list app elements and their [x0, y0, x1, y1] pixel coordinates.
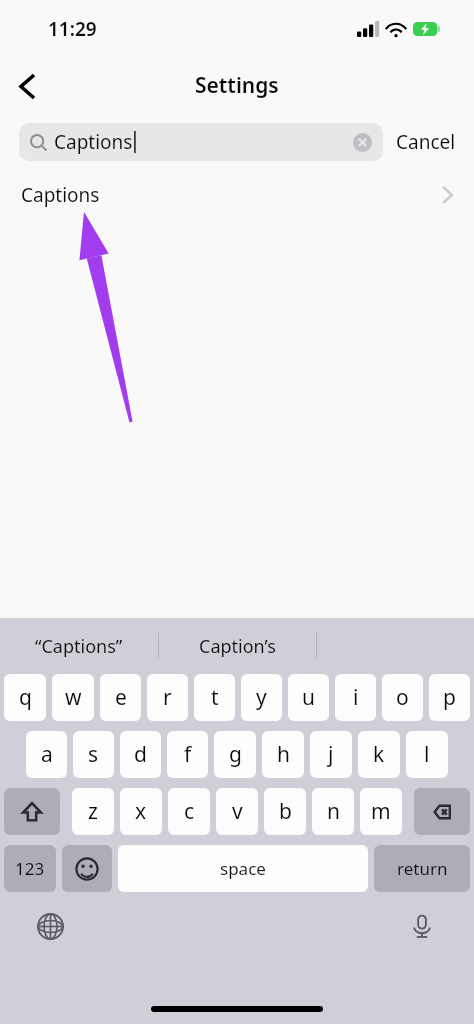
staticText: p	[443, 683, 456, 712]
button[interactable]: j	[310, 731, 352, 778]
staticText: w	[65, 683, 82, 712]
staticText: c	[184, 797, 195, 826]
button[interactable]: Clear text	[353, 133, 372, 152]
button[interactable]: q	[4, 674, 46, 721]
staticText: u	[302, 683, 315, 712]
staticText: 123	[15, 857, 45, 880]
button[interactable]: x	[120, 788, 162, 835]
button[interactable]: Switch keyboard language	[28, 904, 72, 948]
staticText: s	[88, 740, 99, 769]
button[interactable]: d	[120, 731, 161, 778]
button[interactable]: e	[100, 674, 141, 721]
button[interactable]: Back	[4, 63, 50, 109]
staticText: n	[327, 797, 340, 826]
button[interactable]: r	[147, 674, 188, 721]
staticText: f	[184, 740, 192, 769]
button[interactable]: Caption’s	[159, 618, 316, 674]
staticText: t	[211, 683, 219, 712]
button[interactable]: k	[358, 731, 400, 778]
staticText: Cancel	[396, 129, 456, 155]
staticText: d	[134, 740, 147, 769]
button[interactable]: Backspace	[414, 788, 470, 835]
staticText: v	[232, 797, 243, 826]
staticText: “Captions”	[35, 634, 123, 659]
button[interactable]: o	[382, 674, 423, 721]
staticText: y	[256, 683, 267, 712]
button[interactable]: f	[167, 731, 208, 778]
staticText: k	[373, 740, 385, 769]
staticText: l	[424, 740, 430, 769]
staticText: a	[41, 740, 53, 769]
button[interactable]: y	[241, 674, 282, 721]
staticText: i	[353, 683, 359, 712]
button[interactable]: s	[73, 731, 114, 778]
button[interactable]: u	[288, 674, 329, 721]
button[interactable]: l	[406, 731, 448, 778]
staticText: o	[396, 683, 409, 712]
staticText: z	[88, 797, 98, 826]
button[interactable]: Captions	[0, 171, 474, 219]
button[interactable]: Captions	[19, 123, 383, 161]
button[interactable]: p	[429, 674, 470, 721]
button[interactable]: g	[214, 731, 256, 778]
staticText: g	[229, 740, 242, 769]
button[interactable]: “Captions”	[0, 618, 158, 674]
button[interactable]: v	[216, 788, 258, 835]
staticText: x	[135, 797, 147, 826]
button[interactable]: w	[52, 674, 94, 721]
button[interactable]: Cancel	[394, 123, 458, 161]
staticText: 11:29	[48, 16, 97, 42]
staticText: Captions	[54, 129, 133, 155]
staticText: j	[328, 740, 334, 769]
staticText: m	[371, 797, 391, 826]
button[interactable]: Emoji	[62, 845, 112, 892]
staticText: r	[163, 683, 172, 712]
staticText: b	[279, 797, 292, 826]
staticText: space	[220, 857, 266, 880]
staticText: q	[19, 683, 32, 712]
button[interactable]: Shift	[4, 788, 60, 835]
button[interactable]: t	[194, 674, 235, 721]
button[interactable]: c	[168, 788, 210, 835]
button[interactable]: z	[72, 788, 114, 835]
button[interactable]: i	[335, 674, 376, 721]
button[interactable]: Dictation	[400, 904, 444, 948]
staticText: Settings	[195, 71, 279, 100]
staticText: e	[115, 683, 127, 712]
button[interactable]: a	[26, 731, 67, 778]
button[interactable]: b	[264, 788, 306, 835]
button[interactable]: h	[262, 731, 304, 778]
staticText: h	[277, 740, 290, 769]
staticText: Captions	[21, 182, 100, 208]
button[interactable]: 123	[4, 845, 56, 892]
button[interactable]: space	[118, 845, 368, 892]
staticText: Caption’s	[199, 634, 276, 659]
button[interactable]: return	[374, 845, 470, 892]
staticText: return	[397, 857, 448, 880]
button[interactable]: m	[360, 788, 402, 835]
button[interactable]: n	[312, 788, 354, 835]
